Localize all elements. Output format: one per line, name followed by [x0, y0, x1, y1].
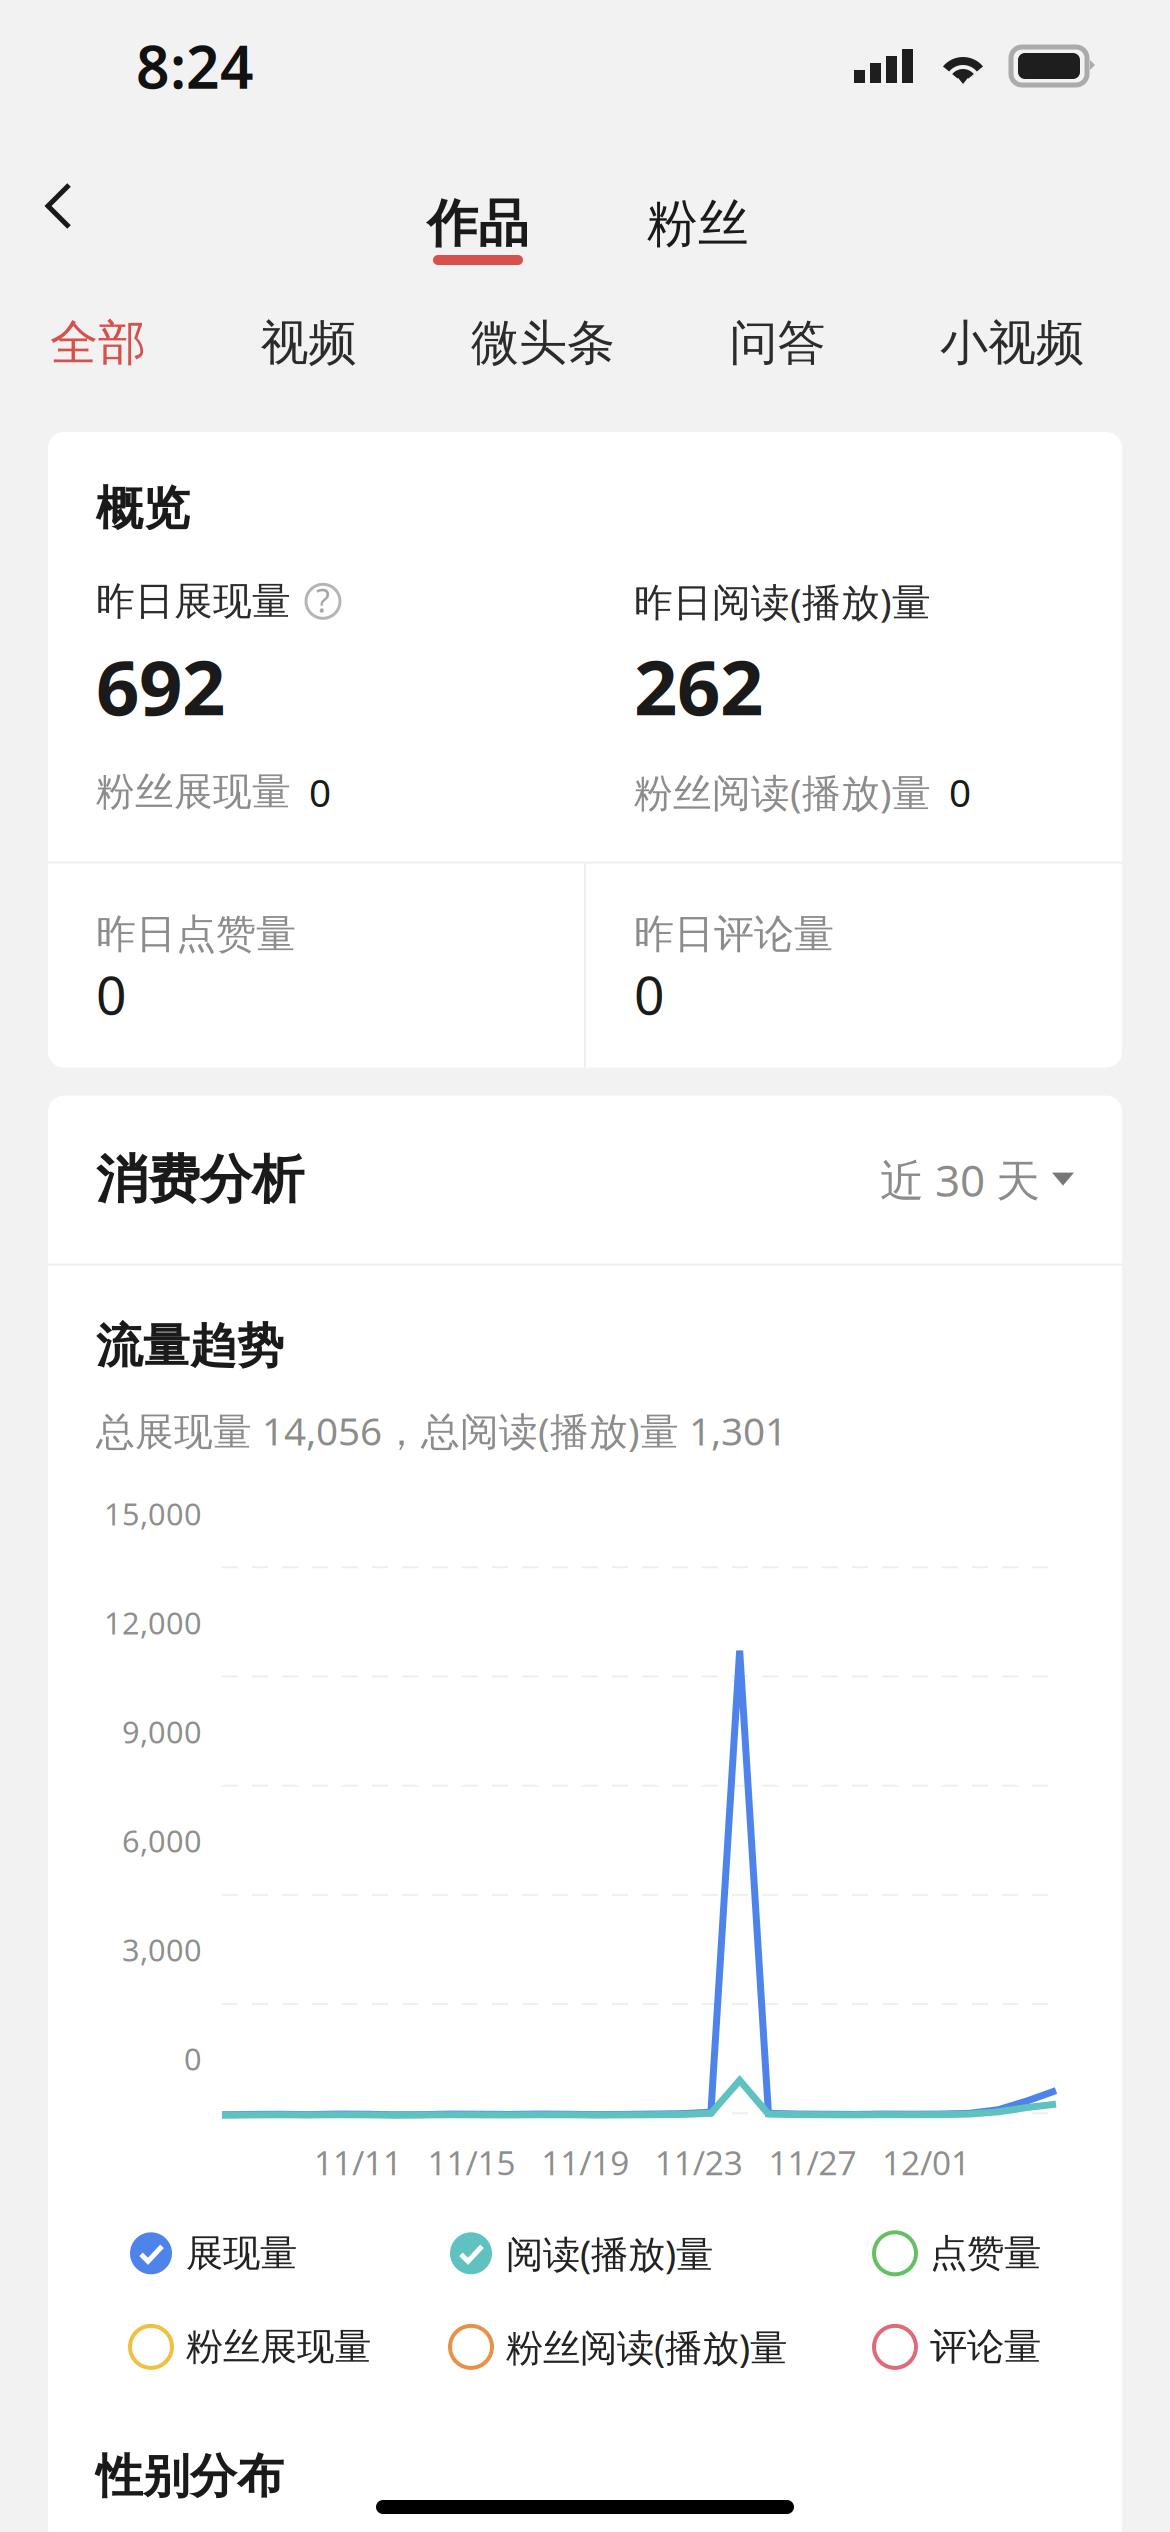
button[interactable]: 粉丝阅读(播放)量: [450, 2322, 787, 2372]
staticText: 692: [96, 635, 225, 736]
staticText: 作品: [427, 193, 529, 255]
button[interactable]: 评论量: [874, 2324, 1041, 2370]
button[interactable]: 展现量: [130, 2230, 297, 2276]
staticText: 粉丝展现量: [186, 2324, 371, 2370]
button[interactable]: 粉丝展现量: [130, 2324, 371, 2370]
staticText: 0: [184, 2038, 202, 2079]
staticText: 粉丝阅读(播放)量: [634, 766, 931, 817]
staticText: 流量趋势: [96, 1318, 284, 1375]
staticText: 262: [634, 635, 763, 736]
staticText: 近 30 天: [880, 1150, 1040, 1209]
staticText: 0: [96, 959, 127, 1029]
button[interactable]: Back: [4, 151, 114, 261]
staticText: 昨日点赞量: [96, 910, 296, 959]
staticText: 粉丝: [647, 193, 749, 255]
staticText: 昨日展现量: [96, 578, 291, 625]
staticText: 视频: [260, 313, 356, 372]
staticText: ?: [316, 579, 330, 622]
staticText: 点赞量: [930, 2230, 1041, 2276]
staticText: 11/23: [655, 2140, 743, 2185]
button[interactable]: 阅读(播放)量: [450, 2228, 713, 2278]
staticText: 15,000: [104, 1493, 202, 1534]
staticText: 12/01: [882, 2140, 970, 2185]
button[interactable]: 粉丝: [638, 193, 758, 265]
staticText: 12,000: [104, 1602, 202, 1643]
staticText: 11/11: [314, 2140, 402, 2185]
button[interactable]: 全部: [50, 295, 146, 390]
staticText: 11/27: [768, 2140, 856, 2185]
staticText: 3,000: [122, 1929, 202, 1970]
staticText: 评论量: [930, 2324, 1041, 2370]
staticText: 小视频: [940, 313, 1084, 372]
staticText: 0: [634, 959, 665, 1029]
staticText: 8:24: [136, 27, 254, 105]
button[interactable]: 视频: [260, 295, 356, 390]
button[interactable]: 作品: [418, 193, 538, 265]
staticText: 6,000: [122, 1820, 202, 1861]
staticText: 11/19: [541, 2140, 629, 2185]
button[interactable]: 小视频: [940, 295, 1084, 390]
staticText: 0: [309, 766, 331, 817]
staticText: 概览: [96, 480, 190, 537]
staticText: 阅读(播放)量: [506, 2228, 713, 2278]
staticText: 消费分析: [96, 1148, 304, 1212]
staticText: 微头条: [471, 313, 615, 372]
staticText: 总展现量 14,056，总阅读(播放)量 1,301: [96, 1405, 787, 1456]
staticText: 粉丝阅读(播放)量: [506, 2322, 787, 2372]
staticText: 昨日阅读(播放)量: [634, 576, 931, 627]
staticText: 问答: [729, 313, 825, 372]
button[interactable]: 点赞量: [874, 2230, 1041, 2276]
staticText: 11/15: [428, 2140, 516, 2185]
button[interactable]: 微头条: [471, 295, 615, 390]
button[interactable]: 问答: [729, 295, 825, 390]
staticText: 昨日评论量: [634, 910, 834, 959]
staticText: 性别分布: [96, 2448, 284, 2505]
staticText: 0: [949, 766, 971, 817]
staticText: 全部: [50, 313, 146, 372]
staticText: 展现量: [186, 2230, 297, 2276]
staticText: 9,000: [122, 1711, 202, 1752]
button[interactable]: 近 30 天: [880, 1150, 1074, 1209]
staticText: 粉丝展现量: [96, 768, 291, 816]
